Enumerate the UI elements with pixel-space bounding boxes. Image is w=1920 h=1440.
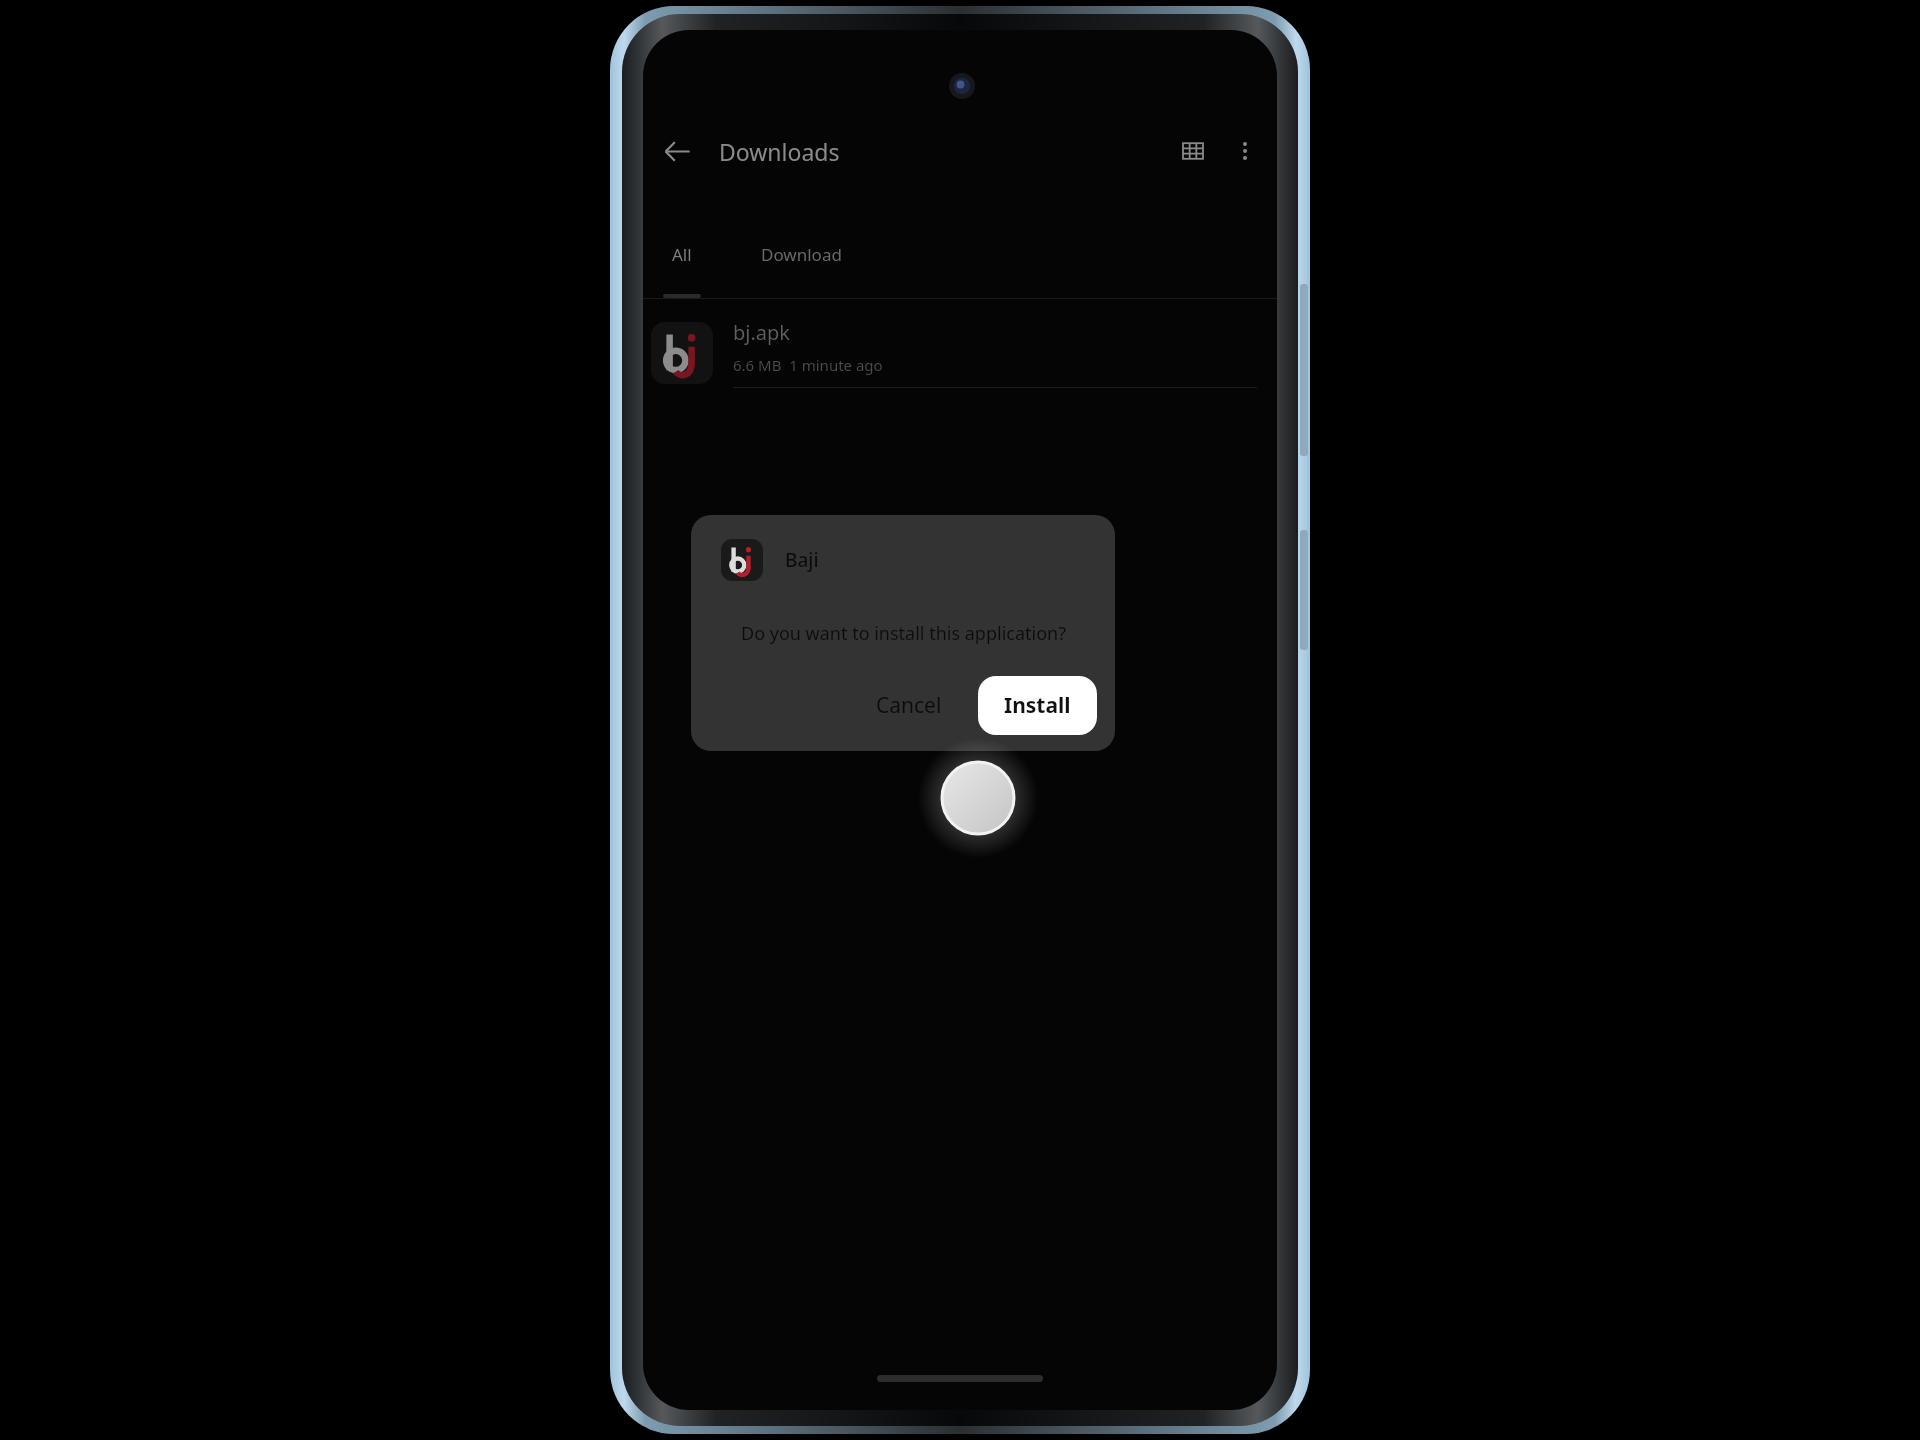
staticText: Download xyxy=(761,243,842,266)
button[interactable]: Back xyxy=(649,123,705,179)
button[interactable]: Cancel xyxy=(854,677,964,734)
staticText: bj.apk xyxy=(733,319,791,346)
button[interactable]: Download xyxy=(721,228,881,280)
staticText: Baji xyxy=(785,547,819,573)
staticText: Downloads xyxy=(719,136,840,167)
button[interactable]: Grid view xyxy=(1167,125,1219,177)
button[interactable]: Install xyxy=(978,676,1097,735)
staticText: Do you want to install this application? xyxy=(741,621,1066,646)
button[interactable]: All xyxy=(643,228,721,280)
staticText: Install xyxy=(1004,691,1071,720)
staticText: All xyxy=(672,243,692,266)
staticText: 6.6 MB 1 minute ago xyxy=(733,355,883,375)
staticText: Cancel xyxy=(876,691,942,720)
button[interactable]: More options xyxy=(1219,125,1271,177)
button[interactable]: bj.apk xyxy=(643,299,1277,407)
